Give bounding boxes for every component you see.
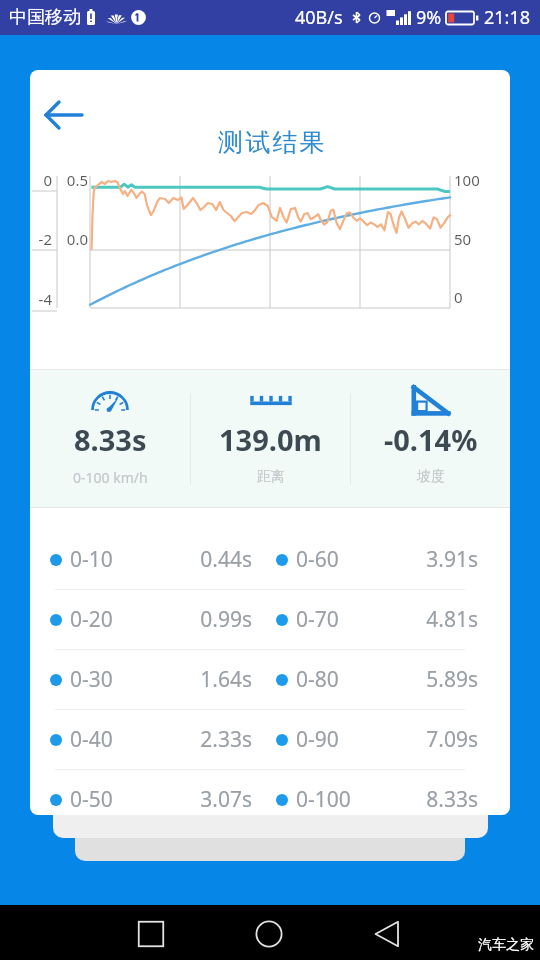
staticText: 1.64s bbox=[113, 665, 252, 694]
button[interactable]: 8.33s bbox=[30, 370, 190, 508]
staticText: 0-60 bbox=[296, 545, 339, 574]
button[interactable]: Back bbox=[42, 93, 86, 137]
staticText: 0 bbox=[454, 287, 494, 307]
staticText: 0-20 bbox=[70, 605, 113, 634]
staticText: -2 bbox=[30, 229, 52, 249]
staticText: 3.91s bbox=[339, 545, 478, 574]
staticText: 0-50 bbox=[70, 785, 113, 814]
staticText: 100 bbox=[454, 170, 494, 190]
staticText: 0.44s bbox=[113, 545, 252, 574]
staticText: 0-30 bbox=[70, 665, 113, 694]
staticText: 9% bbox=[416, 5, 442, 30]
staticText: 0.5 bbox=[60, 170, 88, 190]
staticText: 50 bbox=[454, 229, 494, 249]
button[interactable]: Home bbox=[245, 910, 293, 958]
staticText: 139.0m bbox=[219, 420, 322, 459]
button[interactable]: 0-30 bbox=[30, 649, 510, 709]
staticText: -0.14% bbox=[384, 420, 478, 459]
staticText: 2.33s bbox=[113, 725, 252, 754]
staticText: 5.89s bbox=[339, 665, 478, 694]
staticText: 3.07s bbox=[113, 785, 252, 814]
staticText: 0-100 km/h bbox=[73, 468, 148, 487]
staticText: 0-80 bbox=[296, 665, 339, 694]
staticText: 40B/s bbox=[295, 5, 343, 30]
staticText: 汽车之家 bbox=[478, 936, 534, 954]
staticText: 4.81s bbox=[339, 605, 478, 634]
button[interactable]: 0-20 bbox=[30, 589, 510, 649]
button[interactable]: Back bbox=[364, 910, 412, 958]
staticText: 0-40 bbox=[70, 725, 113, 754]
staticText: 21:18 bbox=[484, 5, 531, 30]
staticText: -4 bbox=[30, 289, 52, 309]
staticText: 0-100 bbox=[296, 785, 351, 814]
staticText: 0-90 bbox=[296, 725, 339, 754]
staticText: 0.0 bbox=[60, 229, 88, 249]
staticText: 中国移动 bbox=[9, 6, 81, 29]
staticText: 0-10 bbox=[70, 545, 113, 574]
staticText: 0 bbox=[30, 170, 52, 190]
staticText: 坡度 bbox=[417, 468, 445, 486]
staticText: 8.33s bbox=[351, 785, 478, 814]
staticText: 0-70 bbox=[296, 605, 339, 634]
staticText: 0.99s bbox=[113, 605, 252, 634]
button[interactable]: -0.14% bbox=[351, 370, 510, 508]
staticText: 测试结果 bbox=[218, 127, 327, 158]
button[interactable]: 0-40 bbox=[30, 709, 510, 769]
button[interactable]: 0-50 bbox=[30, 769, 510, 815]
staticText: 距离 bbox=[257, 468, 285, 486]
staticText: 7.09s bbox=[339, 725, 478, 754]
button[interactable]: 0-10 bbox=[30, 529, 510, 589]
button[interactable]: Recents bbox=[127, 910, 175, 958]
staticText: 8.33s bbox=[74, 420, 147, 459]
button[interactable]: 139.0m bbox=[191, 370, 350, 508]
